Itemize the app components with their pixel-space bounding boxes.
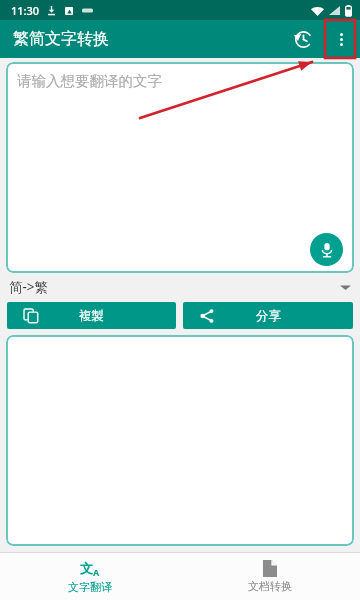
staticText: 繁简文字转换 [13, 29, 109, 49]
button[interactable]: 分享 [183, 302, 353, 329]
button[interactable]: 简->繁 [9, 276, 351, 298]
button[interactable]: 文档转换 [180, 553, 360, 600]
staticText: A [93, 566, 100, 578]
button[interactable] [6, 335, 354, 546]
button[interactable]: 文 [0, 553, 180, 600]
staticText: 文档转换 [248, 579, 292, 593]
staticText: 分享 [256, 308, 281, 324]
button[interactable]: Voice input [310, 233, 343, 266]
button[interactable]: More options [322, 20, 360, 58]
button[interactable]: 複製 [7, 302, 176, 329]
staticText: 文 [80, 560, 93, 576]
staticText: 请输入想要翻译的文字 [17, 72, 162, 90]
staticText: 简->繁 [9, 278, 49, 296]
staticText: 複製 [79, 308, 104, 324]
button[interactable]: 请输入想要翻译的文字 [6, 62, 354, 273]
button[interactable]: History [284, 20, 322, 58]
staticText: 文字翻译 [68, 580, 112, 594]
staticText: 11:30 [11, 3, 40, 18]
